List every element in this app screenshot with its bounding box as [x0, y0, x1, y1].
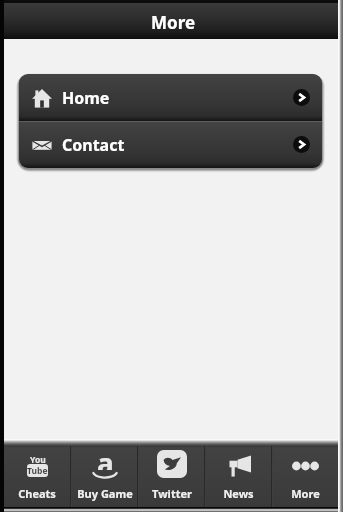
staticText: News — [223, 486, 254, 501]
staticText: Twitter — [152, 486, 192, 501]
button[interactable]: News — [206, 439, 271, 507]
staticText: Contact — [62, 134, 125, 156]
button[interactable]: Contact — [19, 121, 322, 168]
staticText: More — [151, 11, 196, 34]
staticText: Tube — [27, 465, 48, 477]
button[interactable]: Home — [19, 74, 322, 121]
staticText: More — [291, 486, 320, 501]
staticText: Cheats — [18, 486, 56, 501]
staticText: Home — [62, 87, 110, 109]
staticText: You — [30, 454, 46, 466]
button[interactable]: Twitter — [139, 439, 204, 507]
staticText: Buy Game — [77, 486, 133, 501]
button[interactable]: More — [273, 439, 338, 507]
button[interactable]: You — [4, 439, 70, 507]
staticText: a — [97, 444, 114, 470]
button[interactable]: a — [72, 439, 137, 507]
